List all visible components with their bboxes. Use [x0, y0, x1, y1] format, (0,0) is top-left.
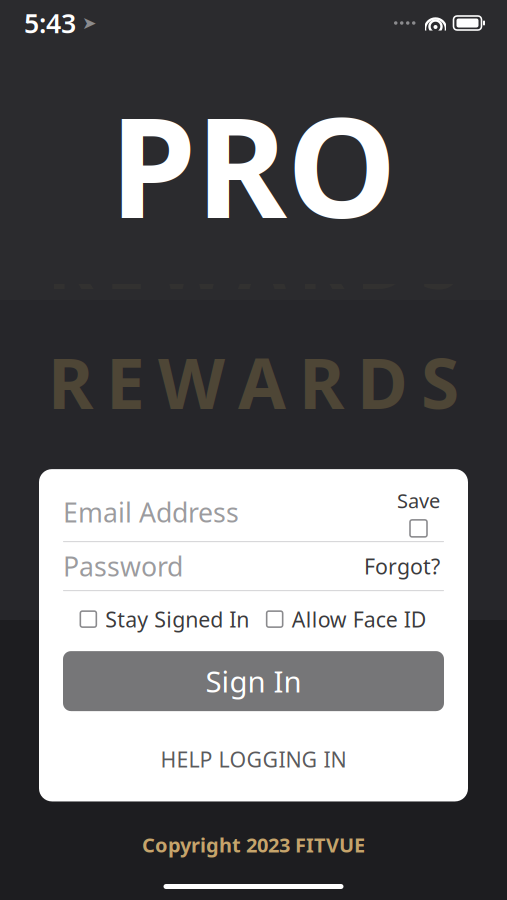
staticText: Sign In [205, 662, 301, 701]
staticText: E [106, 216, 145, 308]
staticText: R [299, 216, 344, 308]
staticText: R [299, 456, 344, 548]
staticText: A [238, 336, 286, 428]
staticText: Password [63, 548, 183, 584]
staticText: D [357, 336, 408, 428]
staticText: Allow Face ID [292, 605, 427, 633]
button[interactable]: Stay Signed In [80, 600, 249, 638]
staticText: Copyright 2023 FITVUE [142, 831, 365, 858]
staticText: S [421, 456, 459, 548]
staticText: E [106, 336, 145, 428]
staticText: A [238, 456, 286, 548]
staticText: Email Address [63, 494, 239, 530]
staticText: S [421, 336, 459, 428]
staticText: D [357, 216, 408, 308]
staticText: R [299, 336, 344, 428]
button[interactable]: Sign In [63, 651, 444, 711]
staticText: Forgot? [364, 552, 440, 580]
staticText: A [238, 216, 286, 308]
button[interactable]: Save email address [393, 487, 444, 537]
button[interactable]: HELP LOGGING IN [63, 735, 444, 783]
staticText: PRO [110, 72, 397, 256]
staticText: R [48, 456, 93, 548]
button[interactable]: Allow Face ID [267, 600, 427, 638]
staticText: W [158, 456, 225, 548]
staticText: R [48, 336, 93, 428]
staticText: Stay Signed In [105, 605, 249, 633]
staticText: HELP LOGGING IN [160, 745, 346, 773]
staticText: E [106, 456, 145, 548]
staticText: D [357, 456, 408, 548]
button[interactable]: Forgot? [360, 546, 444, 586]
staticText: W [158, 216, 225, 308]
staticText: Save [397, 487, 440, 514]
staticText: 5:43 [24, 5, 76, 41]
staticText: ➤ [82, 13, 97, 33]
staticText: W [158, 336, 225, 428]
